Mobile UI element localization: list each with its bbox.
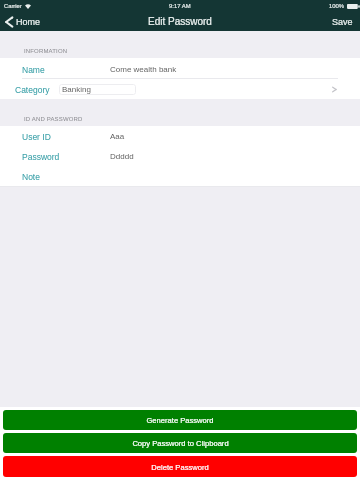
button[interactable]: Category <box>0 79 360 99</box>
button[interactable]: Password <box>0 146 360 166</box>
staticText: Banking <box>62 85 91 94</box>
staticText: Carrier <box>4 3 22 9</box>
staticText: Delete Password <box>151 463 209 471</box>
staticText: Aaa <box>110 132 125 141</box>
staticText: Category <box>15 85 50 94</box>
staticText: Name <box>22 65 45 74</box>
button[interactable]: Generate Password <box>3 410 357 430</box>
staticText: Come wealth bank <box>110 65 177 74</box>
other: Battery 100 percent <box>347 3 360 10</box>
staticText: ID AND PASSWORD <box>24 116 83 123</box>
staticText: Generate Password <box>146 416 214 424</box>
staticText: INFORMATION <box>24 48 68 55</box>
other: Choose category <box>330 85 339 94</box>
button[interactable]: Home <box>0 14 49 30</box>
staticText: 100% <box>329 3 345 10</box>
staticText: Home <box>16 17 41 27</box>
staticText: Edit Password <box>148 16 212 27</box>
button[interactable]: Name <box>0 58 360 79</box>
staticText: Note <box>22 172 40 181</box>
button[interactable]: Note <box>0 166 360 186</box>
staticText: Save <box>332 17 353 27</box>
button[interactable]: User ID <box>0 126 360 146</box>
staticText: Ddddd <box>110 152 134 161</box>
button[interactable]: Save <box>325 14 360 30</box>
staticText: 9:17 AM <box>169 3 191 10</box>
button[interactable]: Copy Password to Clipboard <box>3 433 357 453</box>
staticText: Password <box>22 152 60 161</box>
staticText: Copy Password to Clipboard <box>132 439 229 447</box>
staticText: User ID <box>22 132 51 141</box>
button[interactable]: Delete Password <box>3 456 357 477</box>
